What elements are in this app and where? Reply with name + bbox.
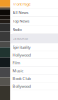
staticText: Bollywood: [12, 83, 30, 89]
staticText: Film: [12, 60, 20, 65]
button[interactable]: Hollywood: [10, 51, 58, 59]
staticText: Front Page: [12, 1, 30, 7]
button[interactable]: Spirituality: [10, 43, 58, 51]
button[interactable]: Film: [10, 59, 58, 67]
button[interactable]: Radio: [10, 25, 58, 34]
button[interactable]: Music: [10, 67, 58, 75]
staticText: CATEGORIES: [12, 37, 27, 40]
staticText: Music: [12, 68, 23, 73]
button[interactable]: Book Club: [10, 75, 58, 82]
button[interactable]: All News: [10, 8, 58, 17]
staticText: All News: [12, 10, 28, 15]
staticText: Radio: [12, 27, 21, 32]
button[interactable]: Bollywood: [10, 82, 58, 90]
staticText: Top News: [12, 18, 29, 24]
button[interactable]: Top News: [10, 17, 58, 25]
staticText: Book Club: [12, 76, 30, 81]
button[interactable]: Front Page: [10, 0, 58, 8]
staticText: Hollywood: [12, 52, 30, 58]
staticText: Spirituality: [12, 44, 30, 50]
